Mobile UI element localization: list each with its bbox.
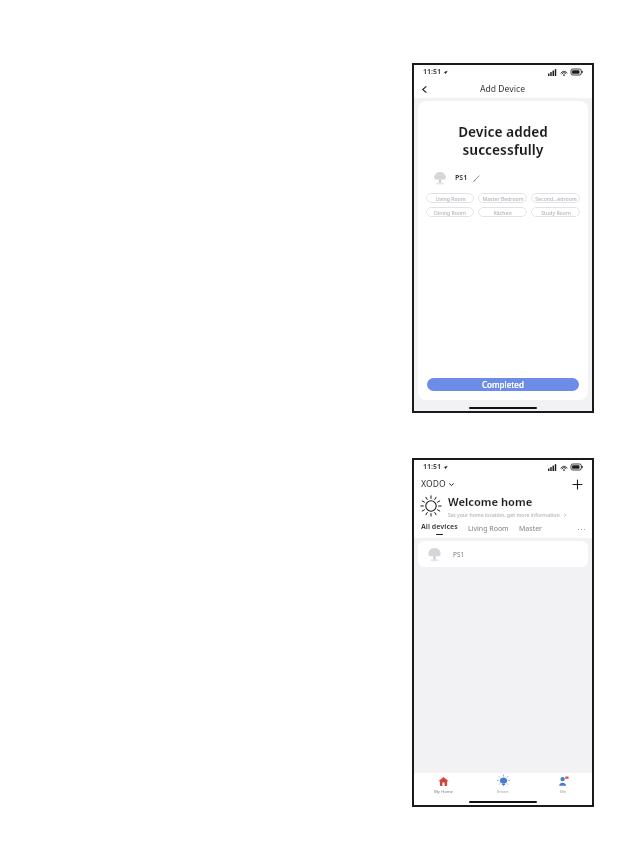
staticText: Completed xyxy=(482,379,524,390)
button[interactable]: Completed xyxy=(427,378,579,391)
button[interactable]: Second...edroom xyxy=(531,193,580,203)
button[interactable]: Living Room xyxy=(468,524,509,534)
button[interactable]: All devices xyxy=(421,522,458,535)
staticText: PS1 xyxy=(455,173,468,183)
staticText: Study Room xyxy=(541,209,571,216)
button[interactable]: More rooms xyxy=(575,523,587,535)
staticText: XODO xyxy=(421,478,446,490)
button[interactable]: Welcome home xyxy=(421,494,585,518)
staticText: Set your home location, get more informa… xyxy=(448,511,560,518)
staticText: PS1 xyxy=(453,550,465,559)
button[interactable]: Master Bedroom xyxy=(478,193,527,203)
staticText: Welcome home xyxy=(448,494,533,509)
staticText: Second...edroom xyxy=(535,195,577,202)
button[interactable]: Add device xyxy=(569,476,585,492)
staticText: Kitchen xyxy=(493,209,512,216)
staticText: Add Device xyxy=(480,83,526,95)
button[interactable]: Dining Room xyxy=(426,207,474,217)
staticText: Smart xyxy=(497,789,509,795)
staticText: All devices xyxy=(421,522,458,532)
staticText: Device added successfully xyxy=(427,123,579,159)
button[interactable]: Back xyxy=(413,80,435,98)
staticText: 11:51 xyxy=(423,67,441,77)
button[interactable]: Me xyxy=(533,773,593,797)
staticText: Dining Room xyxy=(434,209,466,216)
button[interactable]: Rename device xyxy=(472,174,481,183)
button[interactable]: Smart xyxy=(473,773,533,797)
button[interactable]: PS1 xyxy=(418,541,588,567)
button[interactable]: My Home xyxy=(413,773,473,797)
staticText: 11:51 xyxy=(423,462,441,472)
staticText: Living Room xyxy=(435,195,466,202)
button[interactable]: Living Room xyxy=(426,193,474,203)
staticText: My Home xyxy=(434,789,453,795)
button[interactable]: XODO xyxy=(421,478,454,490)
button[interactable]: Master Bedroom xyxy=(519,524,547,534)
staticText: Me xyxy=(560,789,567,795)
button[interactable]: Kitchen xyxy=(478,207,527,217)
staticText: Master Bedroom xyxy=(482,195,524,202)
button[interactable]: Study Room xyxy=(531,207,580,217)
